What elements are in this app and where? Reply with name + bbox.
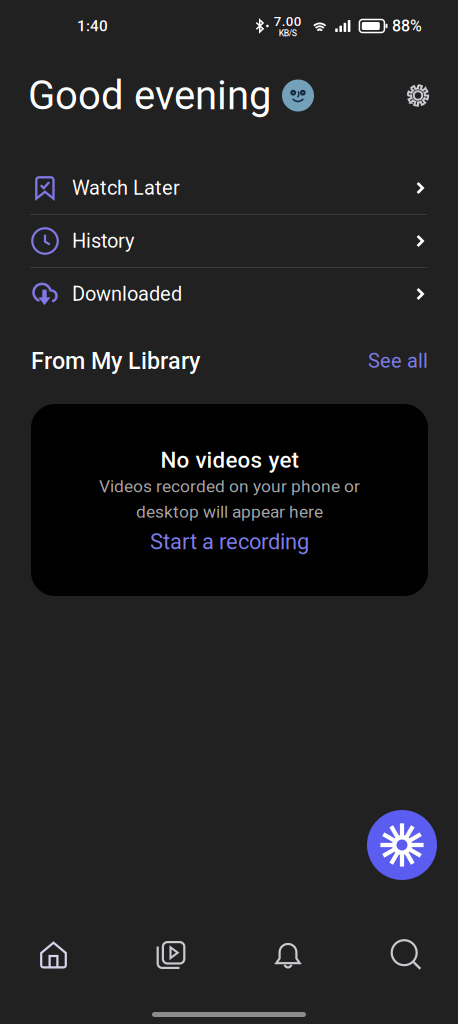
staticText: Downloaded	[72, 282, 182, 306]
staticText: History	[72, 229, 134, 253]
staticText: KB/S	[279, 28, 297, 38]
button[interactable]: Record	[367, 810, 437, 880]
button[interactable]: Home	[0, 928, 107, 982]
button[interactable]: Downloaded	[0, 268, 458, 320]
staticText: See all	[368, 349, 428, 373]
button[interactable]: Search	[341, 928, 458, 982]
staticText: Watch Later	[72, 176, 180, 200]
staticText: No videos yet	[160, 447, 298, 473]
button[interactable]: Notifications	[223, 928, 341, 982]
button[interactable]: Watch Later	[0, 162, 458, 214]
staticText: 7.00	[274, 14, 302, 29]
button[interactable]: Settings	[396, 73, 440, 117]
staticText: Videos recorded on your phone or	[99, 476, 360, 496]
staticText: From My Library	[31, 347, 200, 375]
button[interactable]: Library	[107, 928, 223, 982]
staticText: Good evening	[28, 72, 271, 119]
staticText: 88%	[392, 17, 422, 35]
staticText: 1:40	[77, 17, 108, 35]
staticText: Start a recording	[150, 529, 309, 554]
button[interactable]: See all	[368, 349, 428, 373]
button[interactable]: Start a recording	[150, 529, 309, 554]
staticText: desktop will appear here	[136, 502, 323, 522]
button[interactable]: History	[0, 215, 458, 267]
